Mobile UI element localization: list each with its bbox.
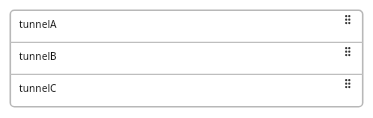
button[interactable]: Reorder tunnelA: [344, 14, 353, 26]
staticText: tunnelB: [19, 49, 57, 63]
button[interactable]: Reorder tunnelC: [344, 78, 353, 90]
button[interactable]: tunnelC: [10, 74, 363, 106]
staticText: tunnelC: [19, 81, 57, 95]
button[interactable]: tunnelB: [10, 42, 363, 74]
staticText: tunnelA: [19, 17, 57, 31]
button[interactable]: tunnelA: [10, 10, 363, 42]
button[interactable]: Reorder tunnelB: [344, 46, 353, 58]
